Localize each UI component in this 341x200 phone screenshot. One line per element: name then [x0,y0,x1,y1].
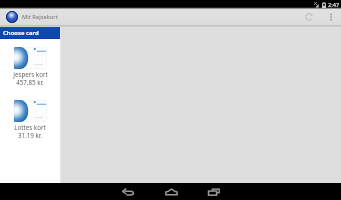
button[interactable]: Jespers kort [0,47,60,92]
staticText: Choose card [3,29,39,37]
button[interactable]: Choose card [0,27,60,39]
staticText: 2:47 [328,1,340,9]
staticText: 31.19 kr. [18,131,42,139]
button[interactable]: More options [324,9,337,25]
button[interactable]: Back [107,183,149,200]
button[interactable]: Lottes kort [0,100,60,145]
staticText: Mit Rejsekort [22,13,58,21]
staticText: 457.85 kr. [16,78,44,86]
staticText: Jespers kort [13,70,48,78]
button[interactable]: Home [150,183,192,200]
button[interactable]: Recent apps [193,183,235,200]
button[interactable]: Refresh [294,9,324,25]
staticText: Lottes kort [14,123,46,131]
